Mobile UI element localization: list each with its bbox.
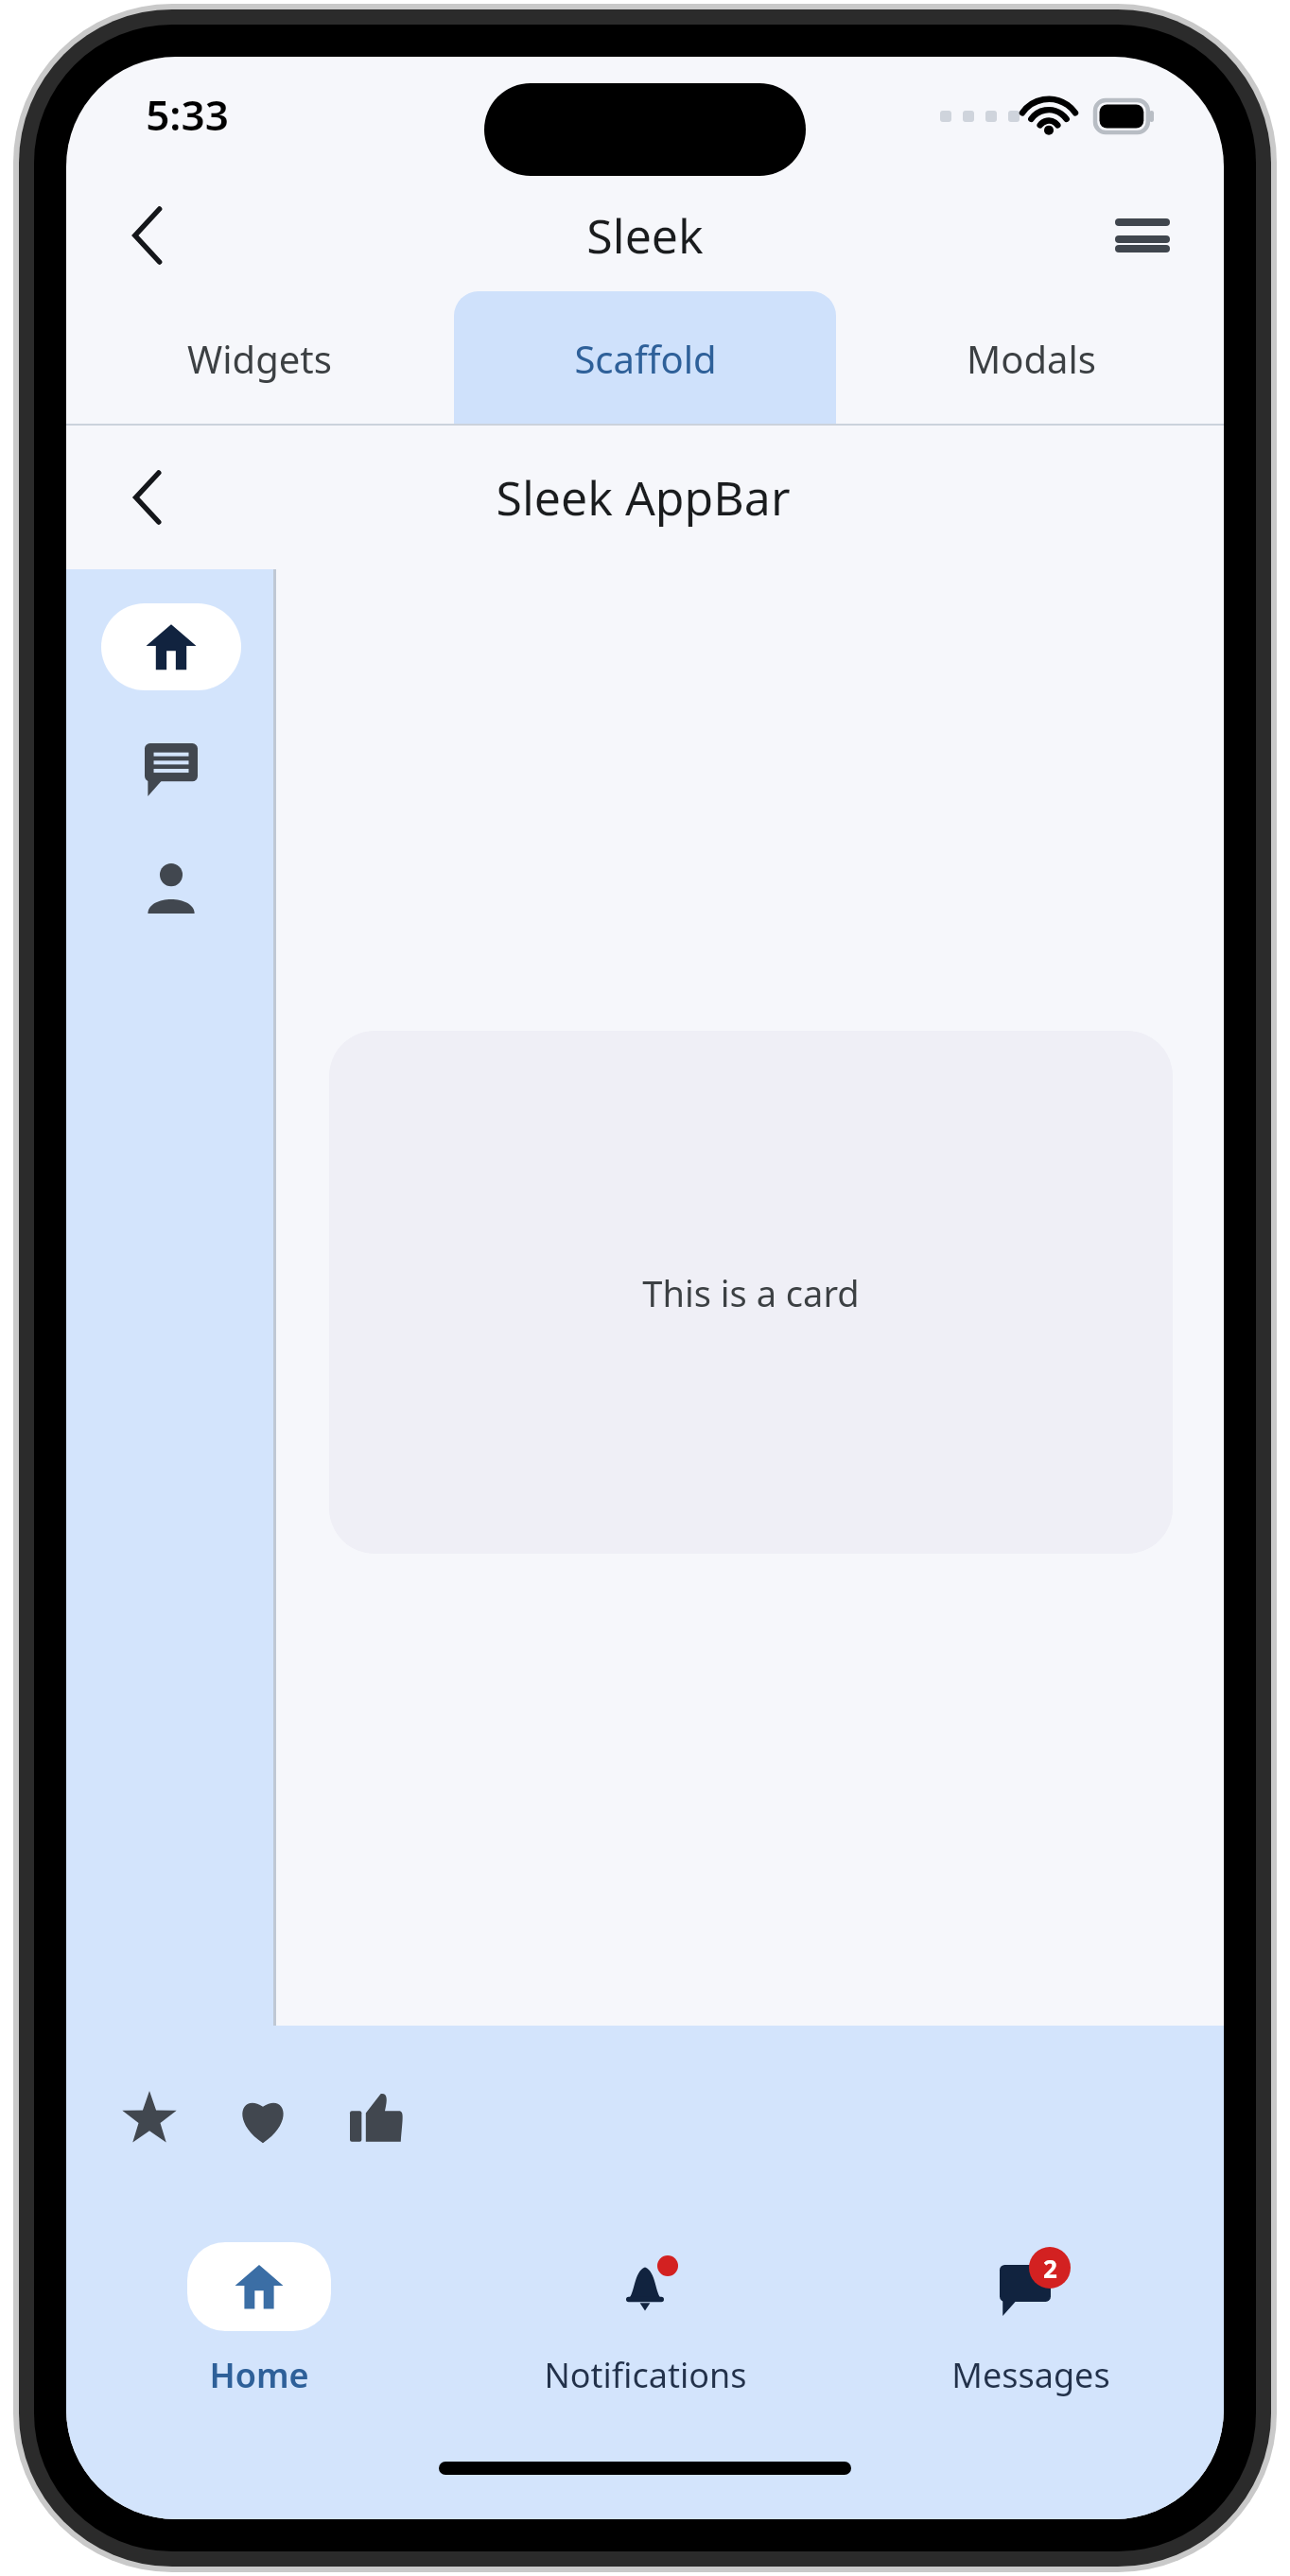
staticText: Modals [967,333,1096,384]
staticText: Messages [951,2352,1110,2398]
button[interactable]: Widgets [68,291,450,426]
button[interactable]: Back [102,190,193,281]
staticText: Scaffold [574,333,717,384]
staticText: 5:33 [146,86,229,143]
button[interactable]: Home [101,603,241,690]
button[interactable]: Modals [840,291,1222,426]
button[interactable]: Profile [126,842,217,932]
button[interactable]: Messages [126,724,217,815]
button[interactable]: Favorite [93,2062,206,2175]
button[interactable]: Notifications [452,2211,838,2428]
staticText: 2 [1043,2252,1057,2285]
staticText: Sleek [586,203,704,268]
button[interactable]: This is a card [329,1031,1173,1554]
button[interactable]: Like [206,2062,320,2175]
button[interactable]: Home [66,2211,452,2428]
button[interactable]: Scaffold [454,291,836,426]
staticText: Home [209,2352,309,2398]
staticText: This is a card [642,1268,860,1317]
button[interactable]: Back [102,452,193,543]
staticText: Sleek AppBar [496,465,791,530]
staticText: Widgets [187,333,332,384]
button[interactable]: 2 [838,2211,1224,2428]
button[interactable]: Thumb up [320,2062,433,2175]
staticText: Notifications [544,2352,747,2398]
button[interactable]: Menu [1097,190,1188,281]
